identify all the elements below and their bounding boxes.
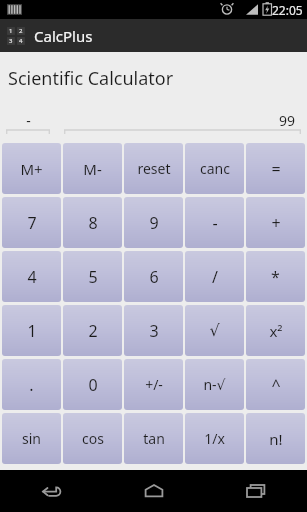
button[interactable]: +/- (124, 359, 183, 410)
button[interactable]: 1 (2, 305, 61, 356)
button[interactable]: reset (124, 143, 183, 194)
staticText: 4 (27, 266, 37, 288)
staticText: + (271, 212, 281, 234)
staticText: 4 (19, 37, 23, 45)
staticText: 3 (9, 37, 13, 45)
button[interactable]: = (246, 143, 305, 194)
button[interactable]: cos (63, 413, 122, 464)
staticText: = (271, 158, 281, 180)
staticText: M- (83, 159, 102, 179)
other: CalcPlus app icon (6, 26, 26, 46)
button[interactable]: - (185, 197, 244, 248)
staticText: 0 (88, 374, 98, 396)
staticText: x² (269, 321, 283, 341)
button[interactable]: M- (63, 143, 122, 194)
button[interactable]: n! (246, 413, 305, 464)
button[interactable]: Back (0, 470, 103, 512)
staticText: 2 (88, 320, 98, 342)
button[interactable]: M+ (2, 143, 61, 194)
staticText: 22:05 (272, 2, 303, 18)
staticText: n! (269, 429, 283, 449)
button[interactable]: 6 (124, 251, 183, 302)
staticText: reset (137, 159, 171, 178)
staticText: 9 (149, 212, 159, 234)
staticText: CalcPlus (34, 26, 93, 46)
staticText: - (212, 212, 218, 234)
staticText: ^ (271, 374, 281, 396)
button[interactable]: ^ (246, 359, 305, 410)
staticText: tan (143, 429, 165, 448)
staticText: . (29, 374, 34, 396)
button[interactable]: 8 (63, 197, 122, 248)
button[interactable]: 3 (124, 305, 183, 356)
staticText: 8 (88, 212, 98, 234)
button[interactable]: n-√ (185, 359, 244, 410)
button[interactable]: Recent apps (205, 470, 307, 512)
staticText: M+ (20, 159, 43, 179)
button[interactable]: / (185, 251, 244, 302)
staticText: / (212, 266, 218, 288)
staticText: 7 (27, 212, 37, 234)
staticText: √ (209, 321, 220, 340)
staticText: cos (82, 429, 104, 448)
button[interactable]: 1/x (185, 413, 244, 464)
staticText: - (26, 111, 31, 129)
staticText: canc (200, 159, 230, 178)
staticText: sin (22, 429, 41, 448)
staticText: 99 (278, 111, 295, 129)
button[interactable]: 7 (2, 197, 61, 248)
staticText: 1/x (204, 429, 225, 448)
button[interactable]: 5 (63, 251, 122, 302)
button[interactable]: x² (246, 305, 305, 356)
button[interactable]: - (6, 111, 50, 134)
button[interactable]: * (246, 251, 305, 302)
staticText: 3 (149, 320, 159, 342)
staticText: 1 (9, 27, 13, 35)
button[interactable]: 4 (2, 251, 61, 302)
staticText: n-√ (203, 375, 226, 394)
staticText: Scientific Calculator (8, 66, 174, 91)
staticText: +/- (145, 375, 163, 394)
button[interactable]: Home (103, 470, 205, 512)
button[interactable]: tan (124, 413, 183, 464)
staticText: * (271, 266, 280, 288)
staticText: 1 (27, 320, 37, 342)
button[interactable]: . (2, 359, 61, 410)
button[interactable]: 9 (124, 197, 183, 248)
button[interactable]: canc (185, 143, 244, 194)
staticText: 5 (88, 266, 98, 288)
button[interactable]: 0 (63, 359, 122, 410)
button[interactable]: + (246, 197, 305, 248)
staticText: 2 (19, 27, 23, 35)
button[interactable]: 99 (64, 111, 301, 134)
button[interactable]: 2 (63, 305, 122, 356)
button[interactable]: sin (2, 413, 61, 464)
staticText: 6 (149, 266, 159, 288)
button[interactable]: √ (185, 305, 244, 356)
